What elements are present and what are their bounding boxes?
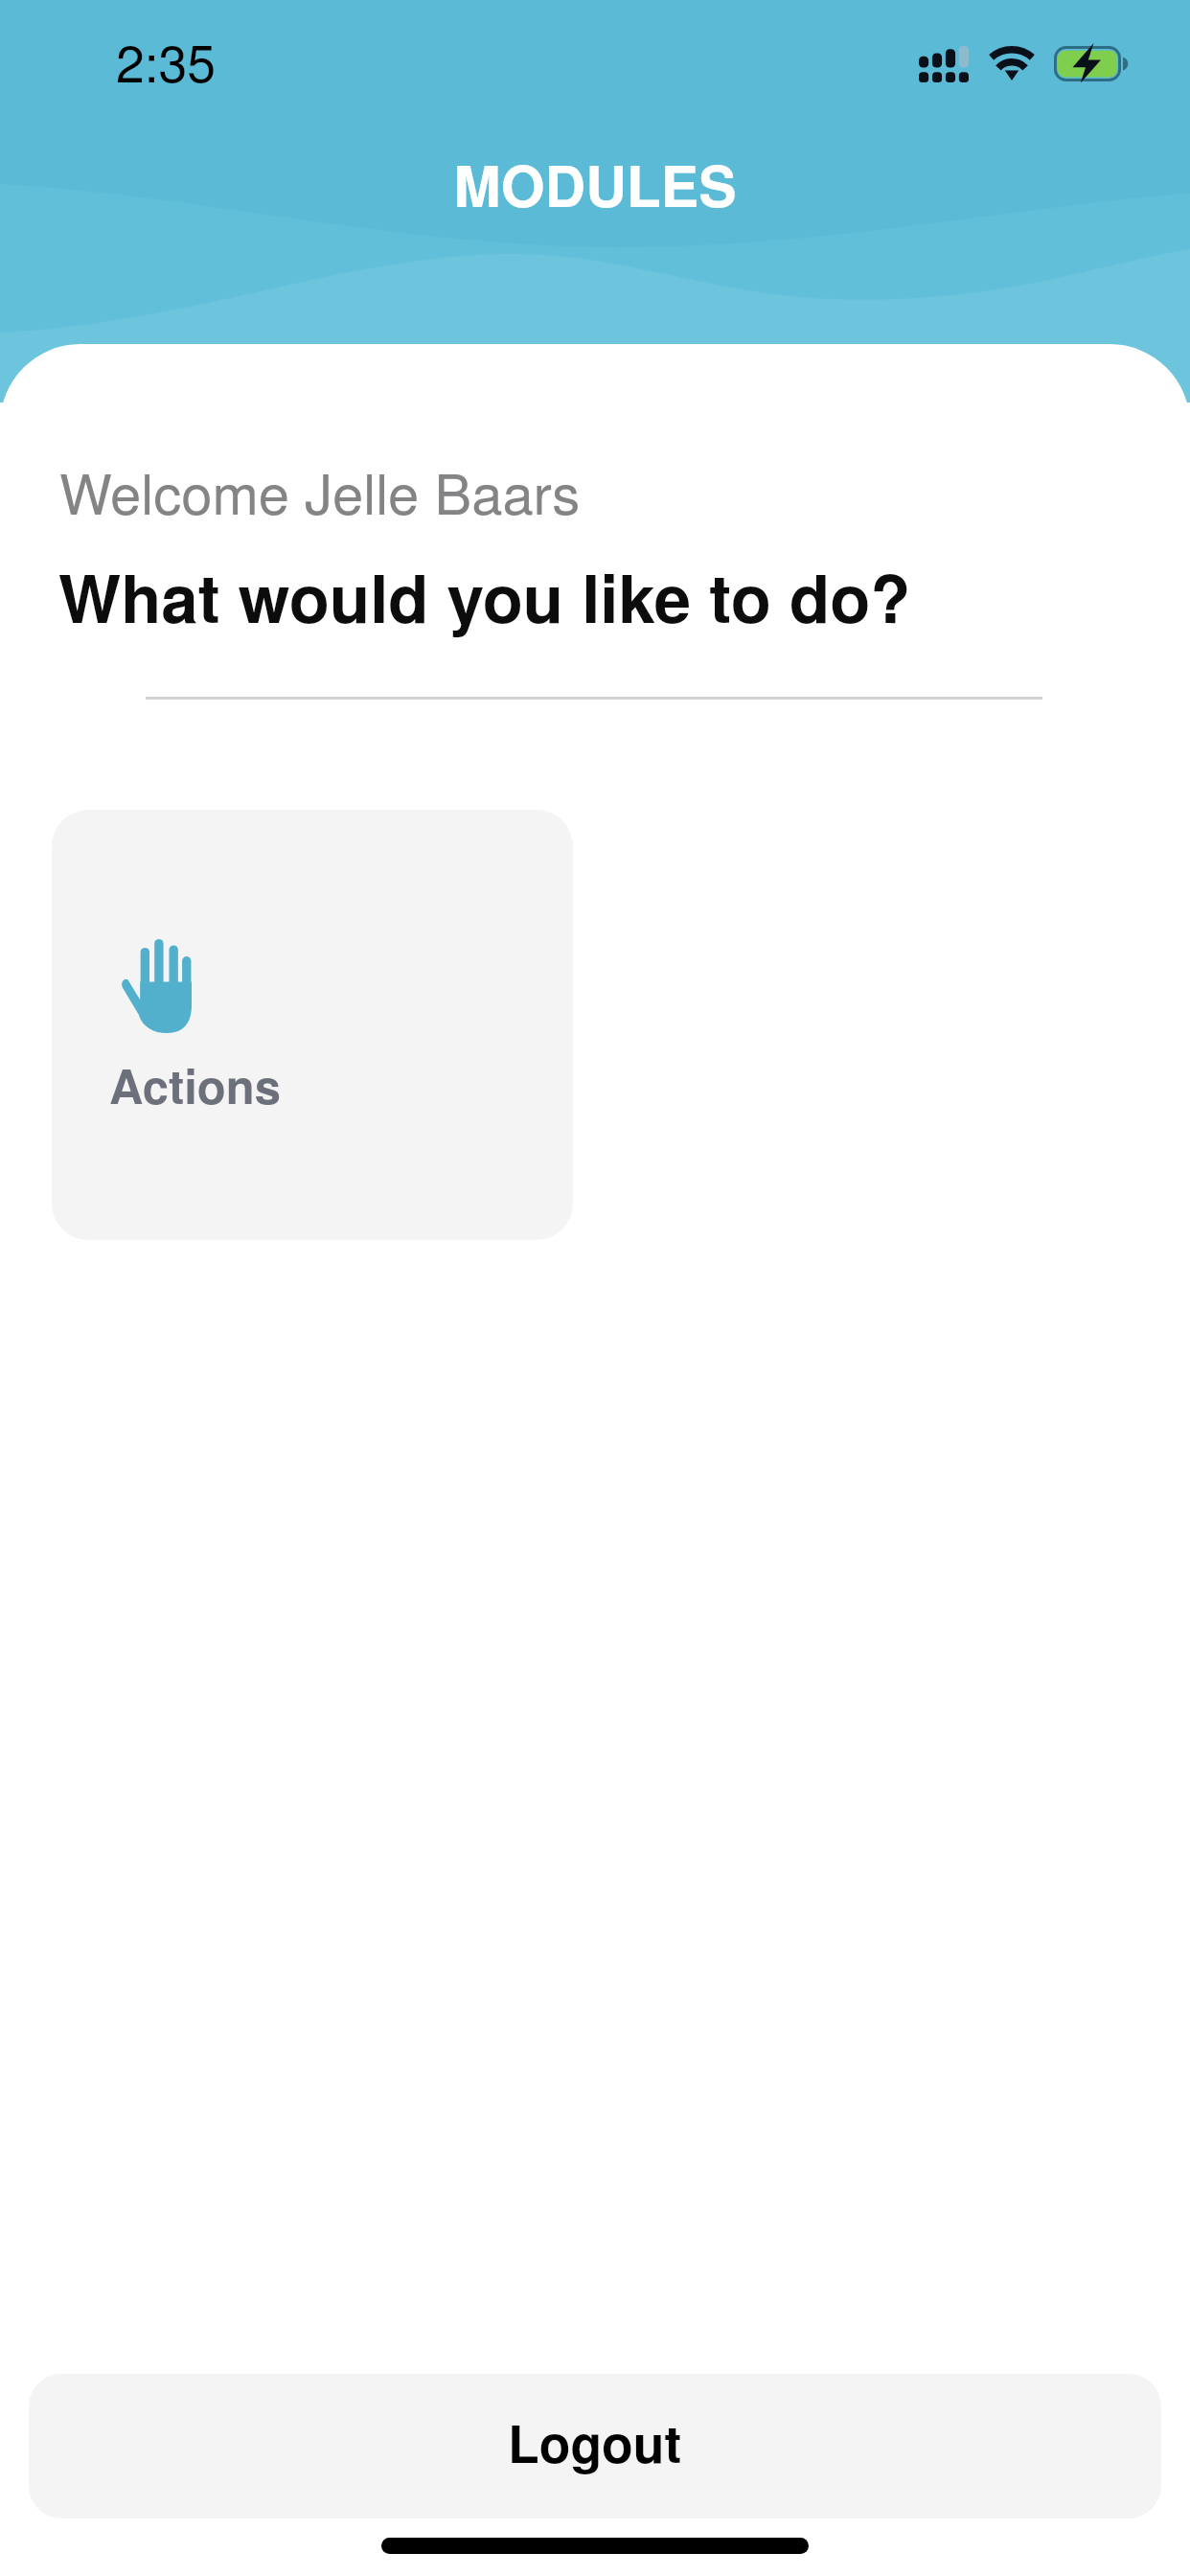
staticText: MODULES — [0, 144, 1190, 224]
staticText: What would you like to do? — [58, 548, 911, 643]
other: Cellular signal — [919, 46, 969, 82]
staticText: 2:35 — [116, 24, 217, 98]
staticText: Actions — [109, 1051, 281, 1118]
button[interactable]: Actions — [52, 810, 573, 1240]
other: Battery charging — [1054, 46, 1130, 81]
staticText: Logout — [508, 2405, 682, 2479]
button[interactable]: Logout — [29, 2374, 1161, 2518]
other: Wi-Fi — [989, 46, 1035, 80]
staticText: Welcome Jelle Baars — [59, 450, 581, 530]
